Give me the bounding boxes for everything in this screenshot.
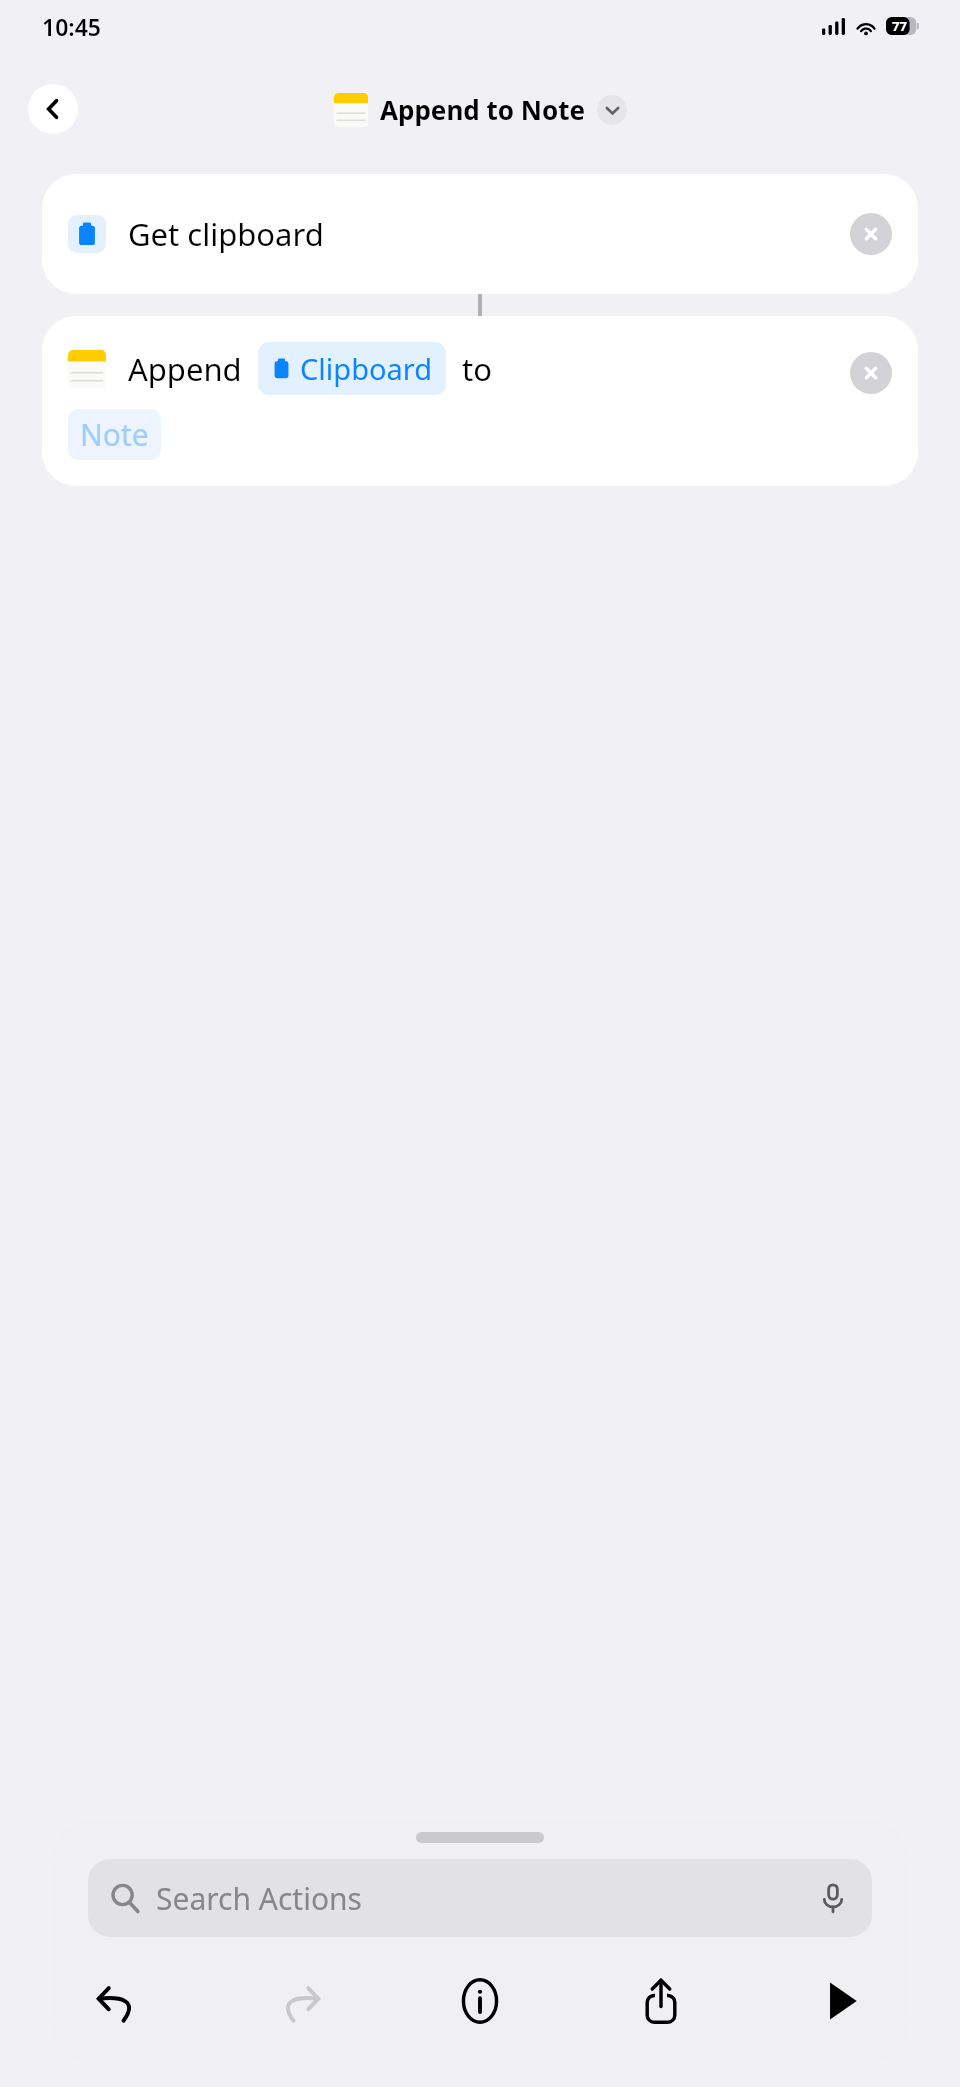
button[interactable]: Undo [80, 1963, 156, 2039]
button[interactable]: Clipboard [258, 342, 446, 395]
staticText: Append to Note [380, 92, 585, 127]
button[interactable]: Details [442, 1963, 518, 2039]
button[interactable]: Remove action [850, 213, 892, 255]
button[interactable]: Redo [261, 1963, 337, 2039]
button[interactable]: Remove action [850, 352, 892, 394]
staticText: to [462, 348, 492, 390]
button[interactable]: Append to Note [334, 92, 627, 127]
button[interactable]: Search Actions [88, 1859, 872, 1937]
staticText: 77 [892, 17, 907, 35]
other: Options [597, 95, 627, 125]
staticText: Get clipboard [128, 213, 324, 255]
button[interactable]: Back [28, 84, 78, 134]
staticText: Append [128, 348, 242, 390]
button[interactable]: Share [623, 1963, 699, 2039]
button[interactable]: Voice search [816, 1881, 850, 1915]
staticText: Search Actions [156, 1878, 362, 1919]
button[interactable]: Get clipboard [42, 174, 918, 294]
button[interactable]: Note [68, 409, 161, 460]
staticText: 10:45 [42, 11, 101, 42]
button[interactable]: Run [804, 1963, 880, 2039]
staticText: Note [80, 414, 149, 455]
button[interactable]: Append [42, 316, 918, 486]
staticText: Clipboard [300, 349, 433, 388]
